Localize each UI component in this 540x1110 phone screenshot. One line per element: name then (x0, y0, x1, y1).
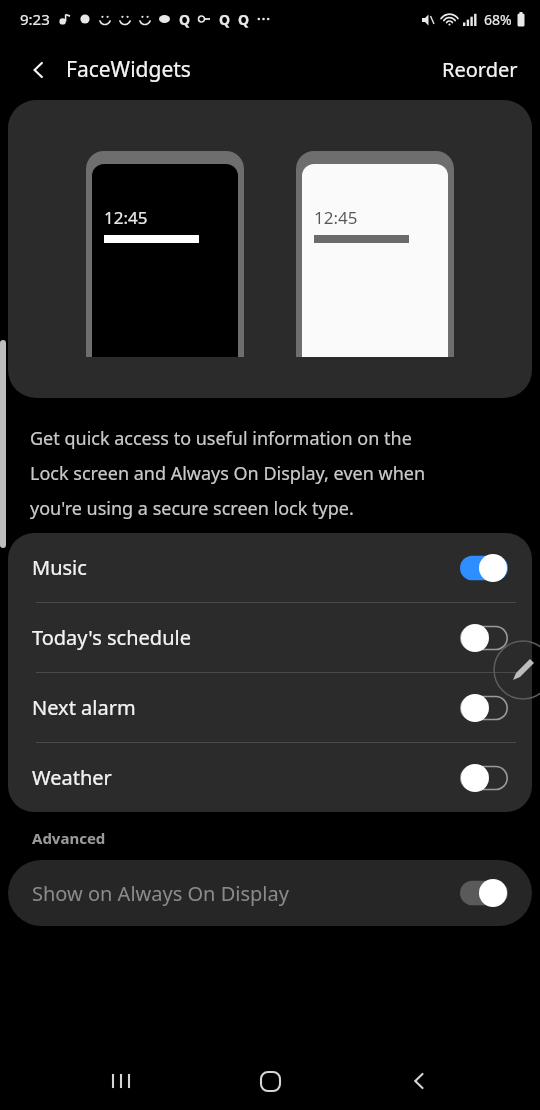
staticText: Music (32, 554, 460, 581)
button[interactable]: Today's schedule (8, 603, 532, 672)
staticText: 68% (484, 10, 512, 29)
button[interactable]: Home (242, 1053, 298, 1109)
staticText: Next alarm (32, 694, 460, 721)
staticText: Show on Always On Display (32, 880, 460, 907)
staticText: Get quick access to useful information o… (30, 426, 412, 451)
button[interactable]: Music (8, 533, 532, 602)
staticText: Lock screen and Always On Display, even … (30, 461, 426, 486)
button[interactable]: Recent apps (93, 1053, 149, 1109)
staticText: Weather (32, 764, 460, 791)
staticText: Advanced (32, 828, 106, 848)
staticText: Reorder (442, 56, 518, 83)
staticText: FaceWidgets (66, 55, 191, 84)
button[interactable]: Back (22, 49, 197, 90)
other: Back (28, 59, 50, 81)
button[interactable]: Back (391, 1053, 447, 1109)
staticText: Q (238, 10, 250, 29)
staticText: you're using a secure screen lock type. (30, 496, 354, 521)
staticText: 12:45 (314, 206, 358, 229)
staticText: 9:23 (20, 9, 50, 29)
button[interactable]: Show on Always On Display (8, 860, 532, 926)
button[interactable]: Edit widgets (493, 640, 540, 700)
button[interactable]: Weather (8, 743, 532, 812)
staticText: Today's schedule (32, 624, 460, 651)
staticText: Q (179, 10, 191, 29)
staticText: Q (219, 10, 231, 29)
button[interactable]: Next alarm (8, 673, 532, 742)
button[interactable]: 12:45 (8, 100, 532, 398)
staticText: 12:45 (104, 206, 148, 229)
button[interactable]: Reorder (432, 48, 528, 91)
